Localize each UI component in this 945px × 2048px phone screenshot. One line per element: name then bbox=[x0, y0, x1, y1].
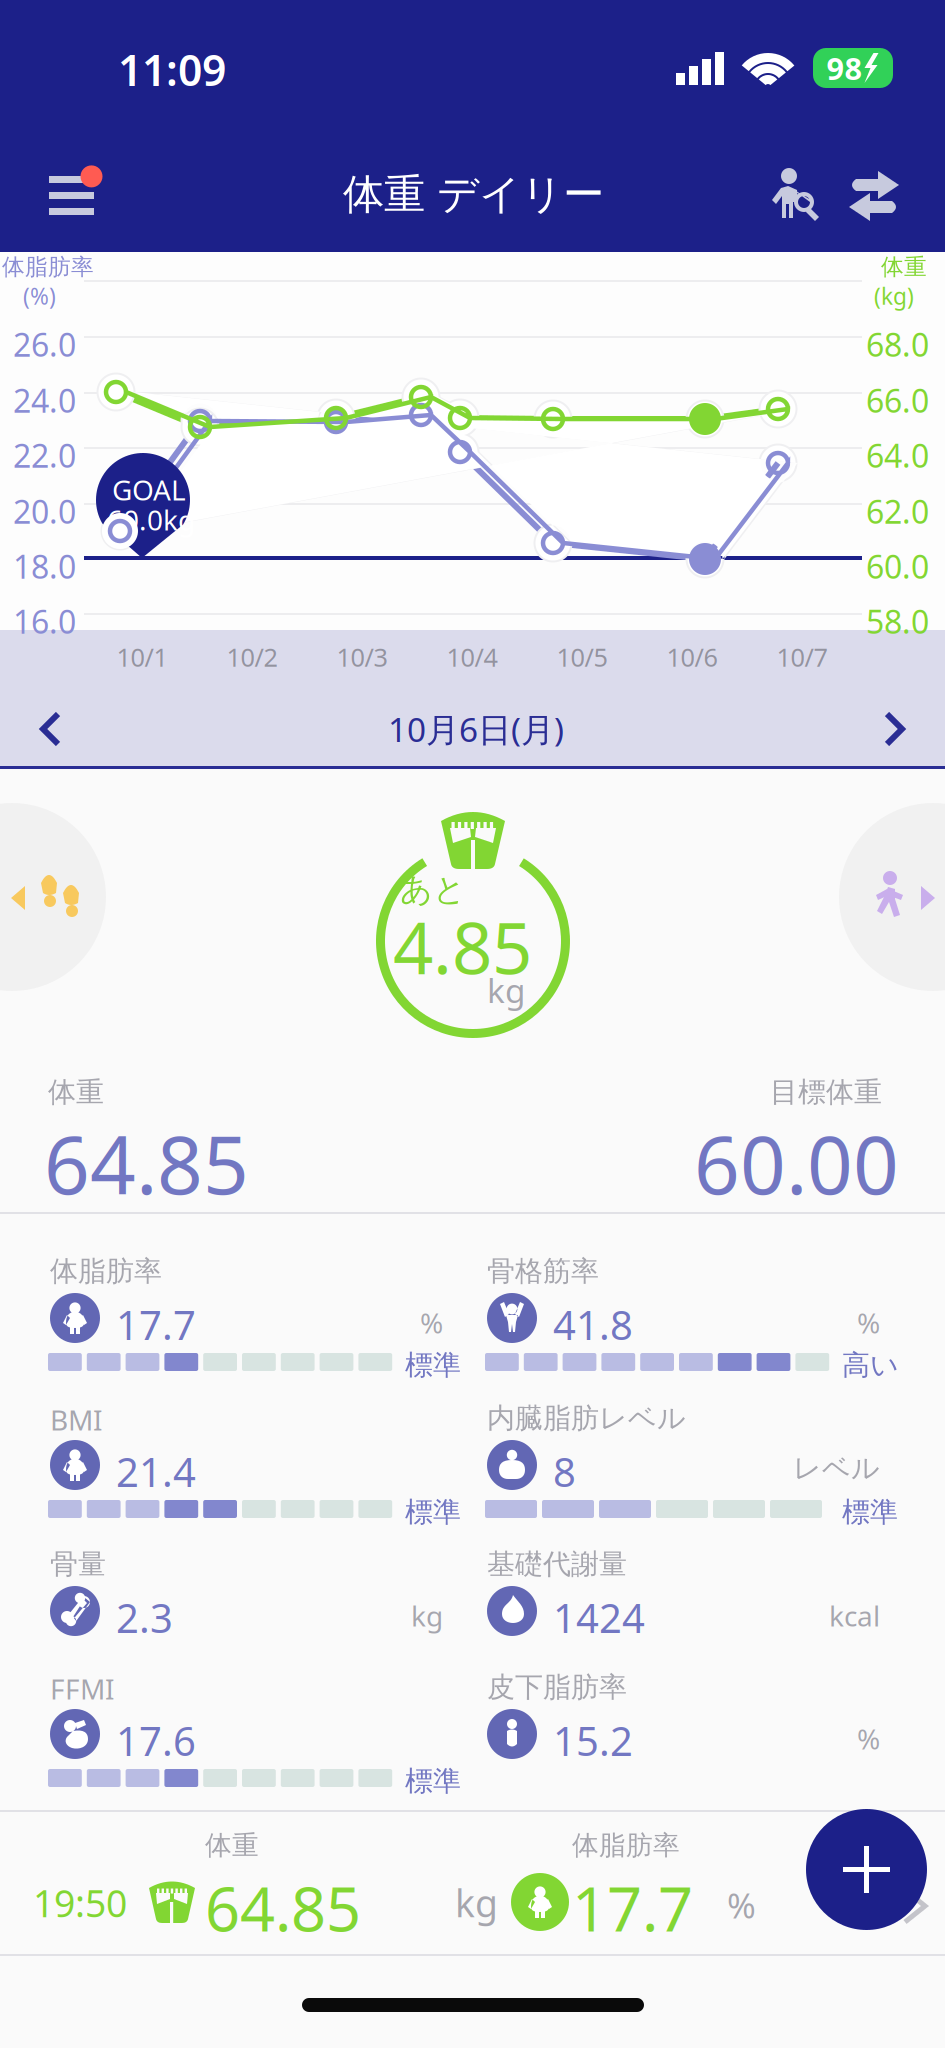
staticText: 1424 bbox=[553, 1591, 645, 1644]
button[interactable]: Activity bbox=[839, 803, 945, 991]
staticText: 10月6日(月) bbox=[388, 707, 564, 751]
staticText: 2.3 bbox=[116, 1591, 173, 1644]
staticText: kg bbox=[411, 1597, 443, 1634]
staticText: 体重 bbox=[881, 253, 927, 281]
staticText: 10/7 bbox=[776, 640, 827, 674]
staticText: 10/6 bbox=[666, 640, 717, 674]
staticText: 体重 bbox=[48, 1075, 104, 1109]
staticText: 標準 bbox=[405, 1495, 461, 1529]
button[interactable]: Previous day bbox=[6, 690, 84, 768]
button[interactable]: Add record bbox=[806, 1809, 927, 1930]
staticText: kcal bbox=[829, 1597, 880, 1634]
staticText: 内臓脂肪レベル bbox=[487, 1401, 686, 1435]
staticText: 17.7 bbox=[116, 1298, 196, 1351]
button[interactable] bbox=[34, 1537, 474, 1677]
staticText: 体重 デイリー bbox=[343, 169, 604, 220]
staticText: 62.0 bbox=[866, 490, 929, 532]
staticText: GOAL bbox=[112, 471, 186, 508]
staticText: レベル bbox=[793, 1451, 880, 1485]
staticText: 17.6 bbox=[116, 1714, 196, 1767]
staticText: 68.0 bbox=[866, 323, 929, 365]
staticText: 64.0 bbox=[866, 434, 929, 476]
button[interactable]: Next day bbox=[861, 690, 939, 768]
staticText: 基礎代謝量 bbox=[487, 1547, 627, 1581]
staticText: 64.85 bbox=[44, 1110, 249, 1216]
button[interactable]: Find user bbox=[772, 168, 820, 221]
staticText: 60.0 bbox=[866, 545, 929, 587]
staticText: FFMI bbox=[50, 1670, 114, 1707]
staticText: 10/5 bbox=[556, 640, 607, 674]
staticText: (kg) bbox=[874, 281, 914, 311]
staticText: kg bbox=[487, 968, 526, 1012]
staticText: 58.0 bbox=[866, 600, 929, 642]
staticText: % bbox=[420, 1304, 443, 1341]
staticText: 26.0 bbox=[13, 323, 76, 365]
staticText: 18.0 bbox=[13, 545, 76, 587]
staticText: 66.0 bbox=[866, 379, 929, 421]
staticText: % bbox=[727, 1882, 756, 1928]
staticText: 11:09 bbox=[118, 41, 226, 98]
staticText: 骨格筋率 bbox=[487, 1254, 599, 1288]
staticText: % bbox=[857, 1720, 880, 1757]
staticText: 60.0kg bbox=[107, 501, 195, 538]
staticText: BMI bbox=[50, 1401, 102, 1438]
button[interactable] bbox=[471, 1537, 911, 1677]
staticText: 98 bbox=[826, 48, 862, 88]
staticText: 10/4 bbox=[446, 640, 497, 674]
button[interactable] bbox=[34, 1244, 474, 1384]
staticText: 17.7 bbox=[572, 1867, 693, 1948]
button[interactable]: Sync bbox=[848, 171, 900, 223]
staticText: 10/2 bbox=[226, 640, 277, 674]
staticText: 4.85 bbox=[393, 900, 532, 994]
staticText: 骨量 bbox=[50, 1547, 106, 1581]
staticText: 22.0 bbox=[13, 434, 76, 476]
staticText: 10/3 bbox=[336, 640, 387, 674]
staticText: 41.8 bbox=[553, 1298, 633, 1351]
button[interactable] bbox=[471, 1244, 911, 1384]
staticText: kg bbox=[455, 1878, 498, 1928]
staticText: 64.85 bbox=[205, 1867, 361, 1948]
staticText: 15.2 bbox=[553, 1714, 633, 1767]
staticText: 体脂肪率 bbox=[50, 1254, 162, 1288]
staticText: 高い bbox=[842, 1348, 899, 1382]
staticText: 標準 bbox=[405, 1764, 461, 1798]
staticText: (%) bbox=[23, 281, 56, 311]
staticText: 体脂肪率 bbox=[2, 253, 94, 281]
button[interactable] bbox=[34, 1660, 474, 1800]
button[interactable] bbox=[34, 1391, 474, 1531]
staticText: 19:50 bbox=[33, 1878, 127, 1928]
staticText: 8 bbox=[553, 1445, 576, 1498]
staticText: 16.0 bbox=[13, 600, 76, 642]
staticText: % bbox=[857, 1304, 880, 1341]
staticText: あと bbox=[400, 870, 466, 909]
button[interactable]: Steps bbox=[0, 803, 106, 991]
button[interactable] bbox=[0, 1812, 790, 1954]
staticText: 60.00 bbox=[694, 1110, 899, 1216]
staticText: 体重 bbox=[205, 1829, 259, 1862]
staticText: 24.0 bbox=[13, 379, 76, 421]
button[interactable] bbox=[471, 1391, 911, 1531]
staticText: 標準 bbox=[405, 1348, 461, 1382]
staticText: 皮下脂肪率 bbox=[487, 1670, 627, 1704]
staticText: 目標体重 bbox=[770, 1075, 882, 1109]
staticText: 21.4 bbox=[116, 1445, 196, 1498]
staticText: 20.0 bbox=[13, 490, 76, 532]
button[interactable]: Menu bbox=[26, 152, 118, 240]
staticText: 標準 bbox=[842, 1495, 898, 1529]
staticText: 体脂肪率 bbox=[572, 1829, 680, 1862]
button[interactable] bbox=[471, 1660, 911, 1800]
staticText: 10/1 bbox=[116, 640, 167, 674]
